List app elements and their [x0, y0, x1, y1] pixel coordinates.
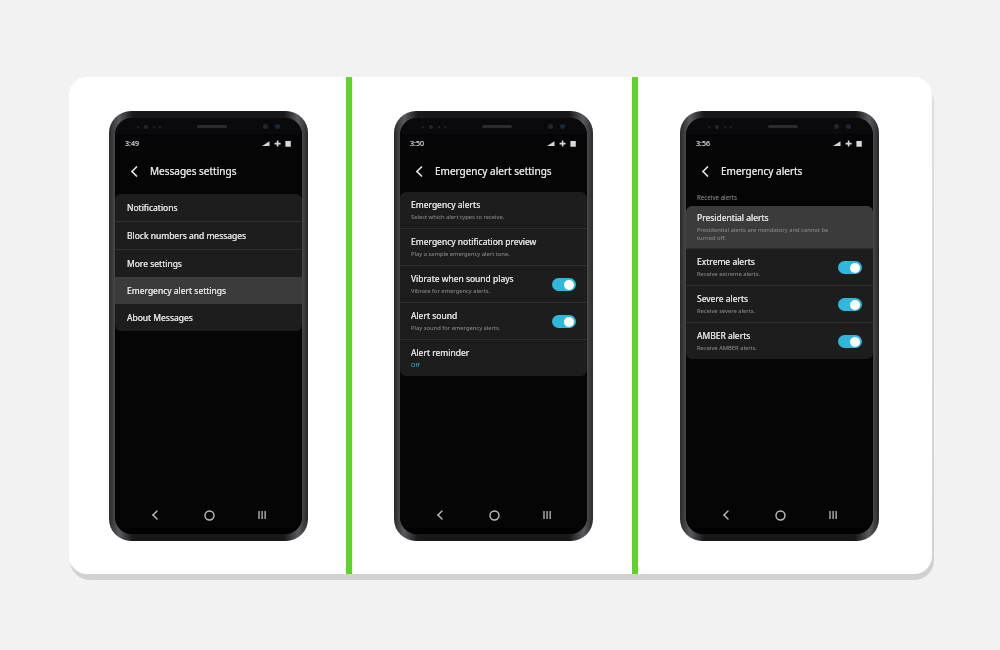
button[interactable]: More settings [115, 250, 302, 277]
button[interactable]: Emergency alerts [400, 192, 587, 228]
button[interactable]: Vibrate when sound plays [400, 266, 587, 302]
button[interactable]: Emergency notification preview [400, 229, 587, 265]
button[interactable]: Back [142, 502, 168, 528]
staticText: About Messages [127, 312, 193, 324]
button[interactable]: Block numbers and messages [115, 222, 302, 249]
staticText: Receive alerts [697, 193, 737, 201]
button[interactable]: Alert reminder [400, 340, 587, 376]
button[interactable]: Home [196, 502, 222, 528]
button[interactable]: AMBER alerts toggle [838, 335, 862, 348]
button[interactable]: About Messages [115, 304, 302, 331]
staticText: Receive extreme alerts. [697, 270, 761, 278]
staticText: 3:50 [410, 139, 424, 149]
staticText: Vibrate when sound plays [411, 273, 514, 285]
button[interactable]: Home [767, 502, 793, 528]
button[interactable]: Recent apps [820, 502, 846, 528]
staticText: Receive AMBER alerts. [697, 344, 758, 352]
staticText: Emergency alert settings [435, 164, 552, 178]
staticText: Select which alert types to receive. [411, 213, 505, 221]
button[interactable]: Extreme alerts [686, 249, 873, 285]
button[interactable]: Alert sound toggle [552, 315, 576, 328]
staticText: 3:49 [125, 139, 139, 149]
button[interactable]: Notifications [115, 194, 302, 221]
button[interactable]: Back [713, 502, 739, 528]
staticText: Emergency notification preview [411, 236, 537, 248]
staticText: 3:56 [696, 139, 710, 149]
staticText: Vibrate for emergency alerts. [411, 287, 491, 295]
button[interactable]: Vibrate when sound plays toggle [552, 278, 576, 291]
staticText: Alert reminder [411, 347, 470, 359]
staticText: Emergency alerts [411, 199, 481, 211]
staticText: Receive severe alerts. [697, 307, 756, 315]
staticText: Severe alerts [697, 293, 749, 305]
staticText: Emergency alerts [721, 164, 803, 178]
button[interactable]: Navigate up [125, 162, 143, 180]
staticText: Emergency alert settings [127, 285, 227, 297]
button[interactable]: Navigate up [696, 162, 714, 180]
staticText: AMBER alerts [697, 330, 751, 342]
button[interactable]: Recent apps [534, 502, 560, 528]
button[interactable]: Extreme alerts toggle [838, 261, 862, 274]
button[interactable]: Presidential alerts [686, 206, 873, 248]
button[interactable]: Emergency alert settings [115, 277, 302, 304]
staticText: Play sound for emergency alerts. [411, 324, 501, 332]
staticText: Messages settings [150, 164, 237, 178]
button[interactable]: Severe alerts toggle [838, 298, 862, 311]
staticText: Presidential alerts [697, 212, 769, 224]
staticText: Off [411, 361, 420, 369]
button[interactable]: Alert sound [400, 303, 587, 339]
staticText: Extreme alerts [697, 256, 755, 268]
button[interactable]: Home [481, 502, 507, 528]
button[interactable]: Navigate up [410, 162, 428, 180]
staticText: Play a sample emergency alert tone. [411, 250, 510, 258]
staticText: Alert sound [411, 310, 458, 322]
staticText: More settings [127, 258, 182, 270]
button[interactable]: Back [427, 502, 453, 528]
staticText: Presidential alerts are mandatory and ca… [697, 226, 829, 242]
staticText: Notifications [127, 202, 178, 214]
button[interactable]: Severe alerts [686, 286, 873, 322]
staticText: Block numbers and messages [127, 230, 247, 242]
button[interactable]: Recent apps [249, 502, 275, 528]
button[interactable]: AMBER alerts [686, 323, 873, 359]
